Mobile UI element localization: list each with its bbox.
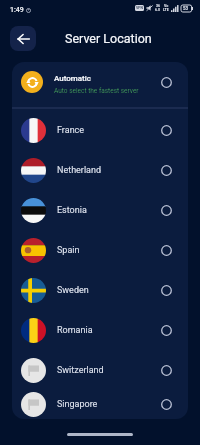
staticText: Netherland [57, 165, 161, 176]
staticText: Sweden [57, 285, 161, 296]
button[interactable]: France [12, 110, 188, 150]
button[interactable]: Sweden [12, 270, 188, 310]
button[interactable]: Romania [12, 310, 188, 350]
button[interactable]: Switzerland [12, 350, 188, 390]
staticText: LTE [163, 8, 169, 12]
button[interactable]: Automatic [12, 62, 188, 107]
button[interactable]: Spain [12, 230, 188, 270]
staticText: Auto select the fastest server [54, 87, 139, 95]
staticText: Spain [57, 245, 161, 256]
staticText: VPN [136, 6, 144, 10]
staticText: Estonia [57, 205, 161, 216]
staticText: 53 [183, 6, 189, 11]
staticText: Singapore [57, 399, 161, 410]
button[interactable]: Singapore [12, 390, 188, 419]
staticText: Romania [57, 325, 161, 336]
staticText: 1:49 [10, 6, 24, 14]
staticText: Server Location [65, 31, 152, 46]
button[interactable]: Netherland [12, 150, 188, 190]
button[interactable]: Estonia [12, 190, 188, 230]
staticText: France [57, 125, 161, 136]
button[interactable]: Back [10, 26, 36, 51]
staticText: Switzerland [57, 365, 161, 376]
staticText: 6.0 [155, 8, 161, 12]
staticText: Automatic [54, 74, 91, 83]
staticText: 36 [156, 4, 161, 8]
staticText: Vo [164, 4, 169, 8]
